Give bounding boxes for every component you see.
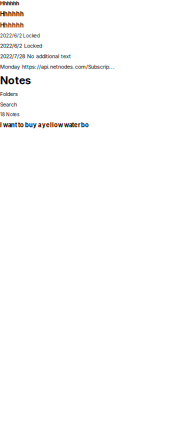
staticText: 18 Notes [0,112,19,117]
staticText: 2022/7/28 No additional text [0,53,71,60]
staticText: 2022/6/2 Locked [0,43,42,49]
staticText: Notes [0,74,31,87]
staticText: Monday https://api.netnodes.com/Subscrip… [0,63,115,70]
staticText: Folders [0,91,18,97]
staticText: Hhhhhh [0,22,24,29]
staticText: 2022/6/2 Locked [0,33,40,39]
staticText: Search [0,101,17,108]
staticText: Hhhhhh [0,10,24,18]
staticText: I want to buy a yellow water bo [0,121,89,129]
staticText: Hhhhhh [0,0,19,6]
